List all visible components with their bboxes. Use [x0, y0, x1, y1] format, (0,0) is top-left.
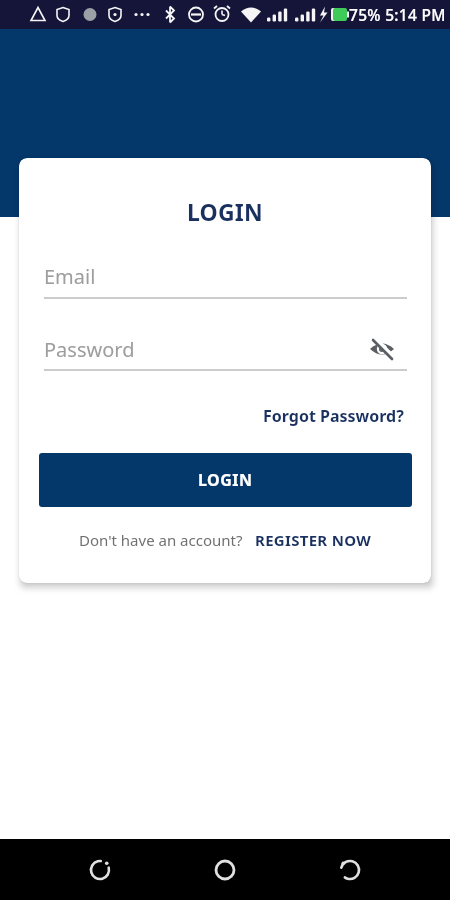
button[interactable]: LOGIN — [39, 453, 412, 507]
button[interactable] — [325, 845, 375, 895]
button[interactable]: Email — [44, 263, 407, 299]
staticText: Email — [44, 263, 96, 290]
button[interactable] — [75, 845, 125, 895]
button[interactable]: Forgot Password? — [259, 401, 408, 431]
staticText: LOGIN — [187, 196, 263, 227]
staticText: 75% 5:14 PM — [349, 4, 446, 25]
staticText: Password — [44, 336, 135, 363]
staticText: Forgot Password? — [263, 405, 404, 427]
staticText: LOGIN — [198, 469, 253, 491]
button[interactable]: REGISTER NOW — [255, 530, 372, 550]
staticText: REGISTER NOW — [255, 530, 372, 550]
staticText: Don't have an account? — [79, 530, 243, 550]
button[interactable] — [200, 845, 250, 895]
button[interactable]: Password — [44, 334, 407, 371]
